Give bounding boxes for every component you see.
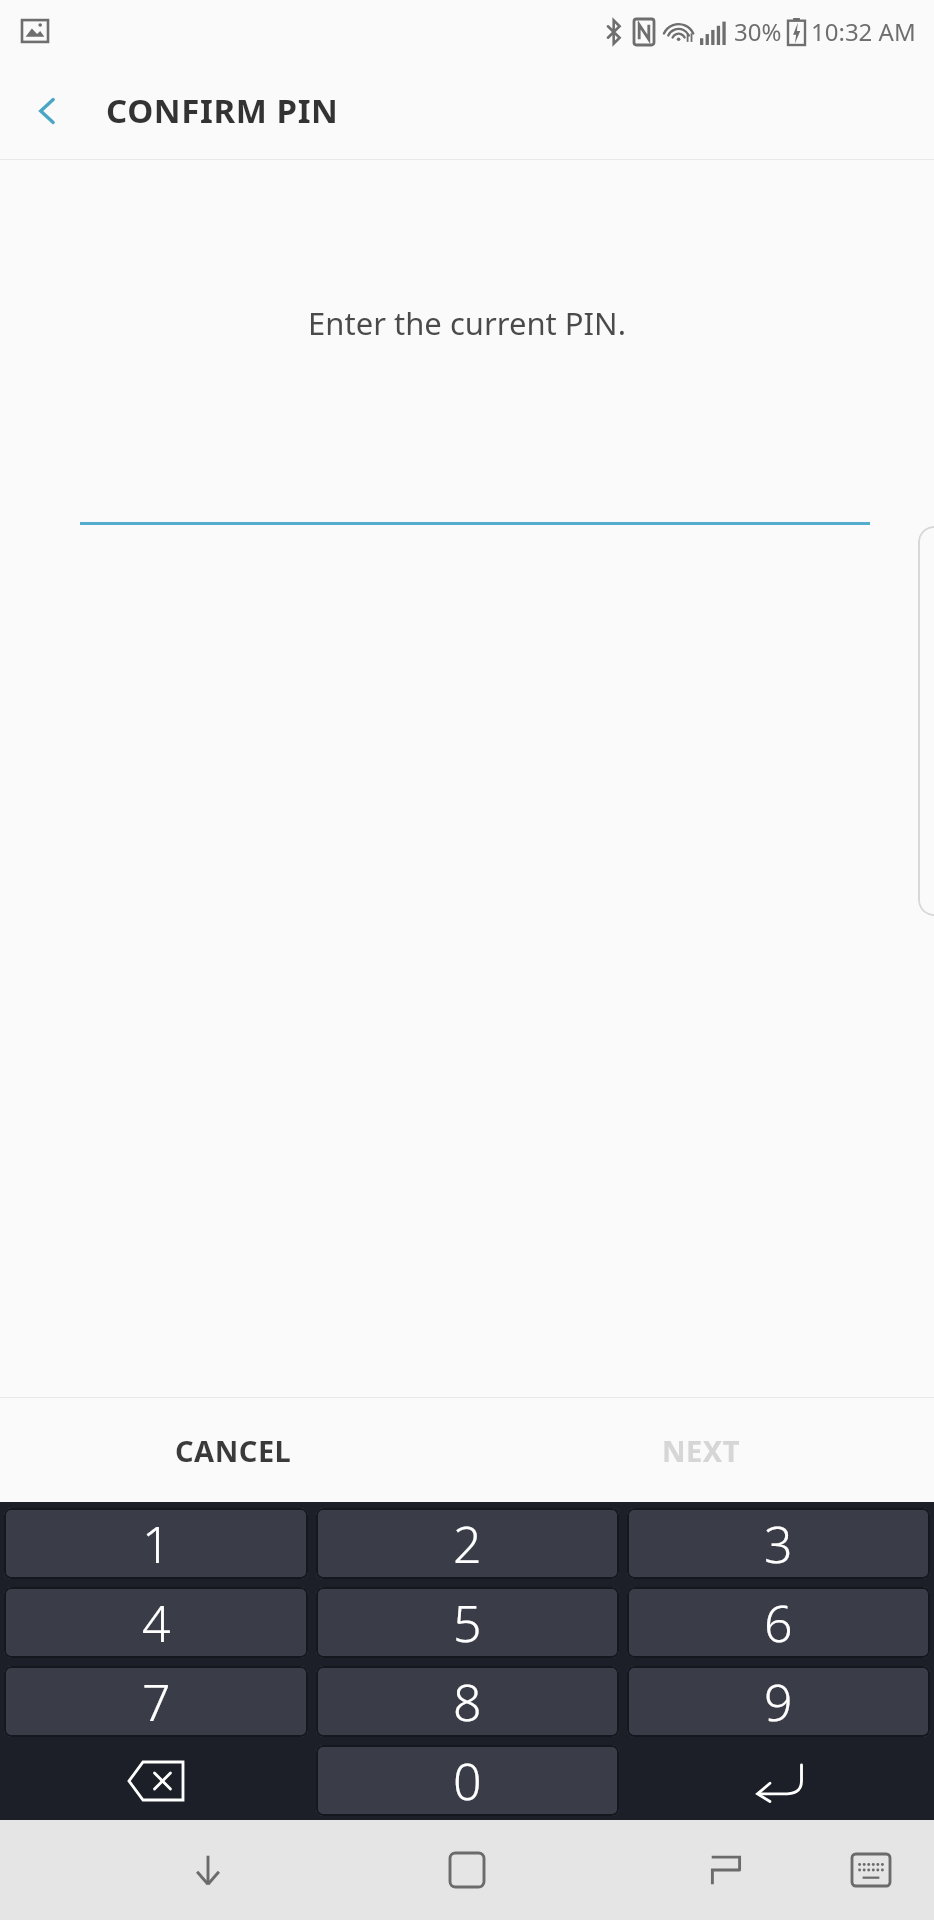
button[interactable]: 3 xyxy=(627,1508,930,1579)
staticText: 9 xyxy=(764,1668,793,1736)
staticText: 30% xyxy=(734,15,782,48)
button[interactable]: Hide keyboard xyxy=(168,1830,248,1910)
staticText: CANCEL xyxy=(175,1431,292,1470)
button[interactable]: 6 xyxy=(627,1587,930,1658)
staticText: 2 xyxy=(453,1510,482,1578)
staticText: 7 xyxy=(142,1668,171,1736)
button[interactable]: Recents xyxy=(686,1830,766,1910)
button[interactable]: 5 xyxy=(316,1587,619,1658)
staticText: 5 xyxy=(453,1589,482,1657)
button[interactable]: 4 xyxy=(4,1587,308,1658)
button[interactable]: 2 xyxy=(316,1508,619,1579)
button[interactable]: 1 xyxy=(4,1508,308,1579)
staticText: 4 xyxy=(142,1589,171,1657)
button[interactable]: Change keyboard xyxy=(831,1830,911,1910)
button[interactable]: Backspace xyxy=(2,1743,310,1818)
staticText: 8 xyxy=(453,1668,482,1736)
staticText: 3 xyxy=(764,1510,793,1578)
staticText: 6 xyxy=(764,1589,793,1657)
button[interactable]: PIN entry field xyxy=(80,470,870,525)
staticText: 10:32 AM xyxy=(811,15,916,48)
staticText: CONFIRM PIN xyxy=(106,88,339,133)
staticText: 0 xyxy=(453,1747,482,1815)
button[interactable]: 9 xyxy=(627,1666,930,1737)
button[interactable]: Home xyxy=(427,1830,507,1910)
button[interactable]: NEXT xyxy=(467,1398,934,1502)
staticText: NEXT xyxy=(662,1431,740,1470)
button[interactable]: 7 xyxy=(4,1666,308,1737)
staticText: Enter the current PIN. xyxy=(308,302,626,344)
staticText: 1 xyxy=(142,1510,171,1578)
button[interactable]: 8 xyxy=(316,1666,619,1737)
button[interactable]: Enter xyxy=(625,1743,932,1818)
button[interactable]: CANCEL xyxy=(0,1398,467,1502)
button[interactable]: Back xyxy=(16,79,80,143)
button[interactable]: 0 xyxy=(316,1745,619,1816)
